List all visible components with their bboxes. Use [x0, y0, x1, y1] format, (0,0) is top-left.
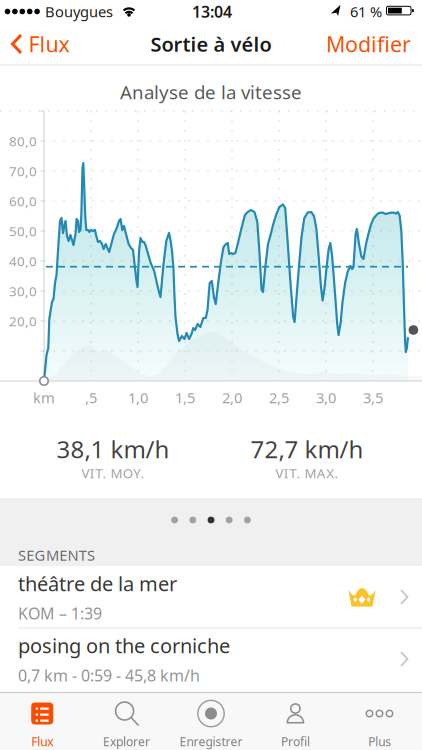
- staticText: VIT. MOY.: [81, 464, 145, 482]
- staticText: Flux: [28, 30, 69, 58]
- staticText: Bouygues: [45, 2, 113, 21]
- staticText: Modifier: [326, 30, 411, 58]
- staticText: km: [33, 388, 55, 407]
- staticText: Explorer: [103, 733, 150, 749]
- button[interactable]: Modifier: [281, 22, 411, 66]
- staticText: 50,0: [9, 222, 37, 240]
- button[interactable]: posing on the corniche: [0, 628, 422, 690]
- staticText: 3,5: [363, 388, 383, 407]
- staticText: Plus: [368, 733, 391, 749]
- staticText: VIT. MAX.: [275, 464, 339, 482]
- staticText: posing on the corniche: [18, 632, 230, 659]
- staticText: 60,0: [9, 192, 37, 210]
- staticText: 2,0: [222, 388, 242, 407]
- staticText: 20,0: [9, 312, 37, 330]
- staticText: 72,7 km/h: [250, 433, 363, 465]
- button[interactable]: Plus: [338, 692, 422, 750]
- staticText: 3,0: [316, 388, 336, 407]
- button[interactable]: Explorer: [84, 692, 169, 750]
- staticText: 1,0: [128, 388, 148, 407]
- button[interactable]: Enregistrer: [169, 692, 253, 750]
- staticText: Analyse de la vitesse: [120, 80, 302, 104]
- staticText: 80,0: [9, 132, 37, 150]
- button[interactable]: Flux: [0, 692, 84, 750]
- staticText: 61 %: [350, 2, 382, 21]
- staticText: 70,0: [9, 162, 37, 180]
- staticText: ,5: [85, 388, 97, 407]
- staticText: 0,7 km - 0:59 - 45,8 km/h: [18, 665, 200, 686]
- staticText: 1,5: [175, 388, 195, 407]
- staticText: Sortie à vélo: [150, 31, 271, 57]
- staticText: KOM – 1:39: [18, 603, 102, 624]
- button[interactable]: théâtre de la mer: [0, 566, 422, 628]
- staticText: SEGMENTS: [18, 545, 95, 565]
- staticText: 30,0: [9, 282, 37, 300]
- staticText: Flux: [31, 733, 53, 749]
- staticText: théâtre de la mer: [18, 570, 177, 597]
- staticText: Enregistrer: [179, 733, 242, 749]
- button[interactable]: Profil: [253, 692, 338, 750]
- staticText: 40,0: [9, 252, 37, 270]
- staticText: 2,5: [269, 388, 289, 407]
- button[interactable]: Flux: [7, 22, 73, 66]
- staticText: 38,1 km/h: [56, 433, 169, 465]
- staticText: Profil: [281, 733, 310, 749]
- staticText: 13:04: [192, 1, 232, 22]
